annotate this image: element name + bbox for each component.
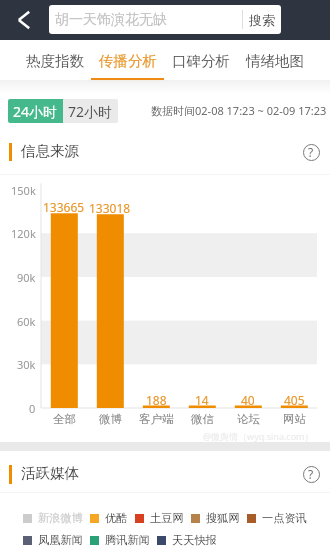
staticText: 90k [17, 270, 36, 285]
staticText: 论坛 [237, 412, 260, 426]
button[interactable]: 腾讯新闻 [90, 533, 150, 547]
staticText: 传播分析 [99, 52, 157, 70]
button[interactable]: 土豆网 [135, 511, 184, 525]
button[interactable]: 天天快报 [157, 533, 217, 547]
staticText: 微信 [191, 412, 214, 426]
button[interactable]: 新浪微博 [23, 511, 83, 525]
staticText: 40 [241, 392, 255, 408]
staticText: 凤凰新闻 [38, 533, 83, 547]
button[interactable]: 搜索 [243, 5, 281, 34]
staticText: 口碑分析 [172, 52, 230, 70]
staticText: 天天快报 [172, 533, 217, 547]
staticText: 腾讯新闻 [105, 533, 150, 547]
staticText: 优酷 [105, 511, 128, 525]
staticText: 活跃媒体 [21, 464, 79, 482]
button[interactable]: 72小时 [63, 99, 118, 123]
button[interactable]: Help [299, 462, 323, 486]
staticText: 14 [195, 392, 209, 408]
button[interactable]: 凤凰新闻 [23, 533, 83, 547]
button[interactable]: 一点资讯 [247, 511, 307, 525]
button[interactable]: Help [299, 140, 323, 164]
staticText: 全部 [53, 412, 76, 426]
button[interactable]: 热度指数 [18, 40, 91, 80]
staticText: 133018 [89, 200, 131, 216]
staticText: ? [308, 144, 314, 160]
staticText: 土豆网 [150, 511, 184, 525]
staticText: 数据时间02-08 17:23 ~ 02-09 17:23 [151, 103, 327, 118]
button[interactable]: 传播分析 [91, 40, 164, 80]
staticText: 405 [284, 392, 305, 408]
button[interactable]: 胡一天饰演花无缺 [49, 5, 281, 34]
staticText: 搜索 [249, 12, 275, 28]
staticText: 30k [17, 357, 36, 372]
staticText: 150k [11, 183, 36, 198]
button[interactable]: 搜狐网 [191, 511, 240, 525]
staticText: 胡一天饰演花无缺 [55, 11, 167, 29]
staticText: 搜狐网 [206, 511, 240, 525]
button[interactable]: 口碑分析 [164, 40, 238, 80]
staticText: 微博 [99, 412, 122, 426]
staticText: 120k [11, 226, 36, 241]
button[interactable]: Back [0, 0, 48, 40]
staticText: ? [308, 466, 314, 482]
staticText: 133665 [43, 199, 85, 215]
staticText: 188 [146, 392, 167, 408]
button[interactable]: 24小时 [8, 99, 63, 123]
button[interactable]: 优酷 [90, 511, 128, 525]
staticText: 信息来源 [21, 142, 79, 160]
staticText: 热度指数 [26, 52, 84, 70]
staticText: 客户端 [139, 412, 174, 426]
staticText: 新浪微博 [38, 511, 83, 525]
button[interactable]: 情绪地图 [238, 40, 312, 80]
staticText: 72小时 [68, 102, 113, 121]
staticText: 网站 [283, 412, 306, 426]
staticText: 24小时 [13, 102, 58, 121]
staticText: 60k [17, 314, 36, 329]
staticText: 情绪地图 [246, 52, 304, 70]
staticText: @微舆情（wyq.sina.com） [203, 430, 314, 442]
staticText: 一点资讯 [262, 511, 307, 525]
staticText: 0 [29, 401, 36, 416]
